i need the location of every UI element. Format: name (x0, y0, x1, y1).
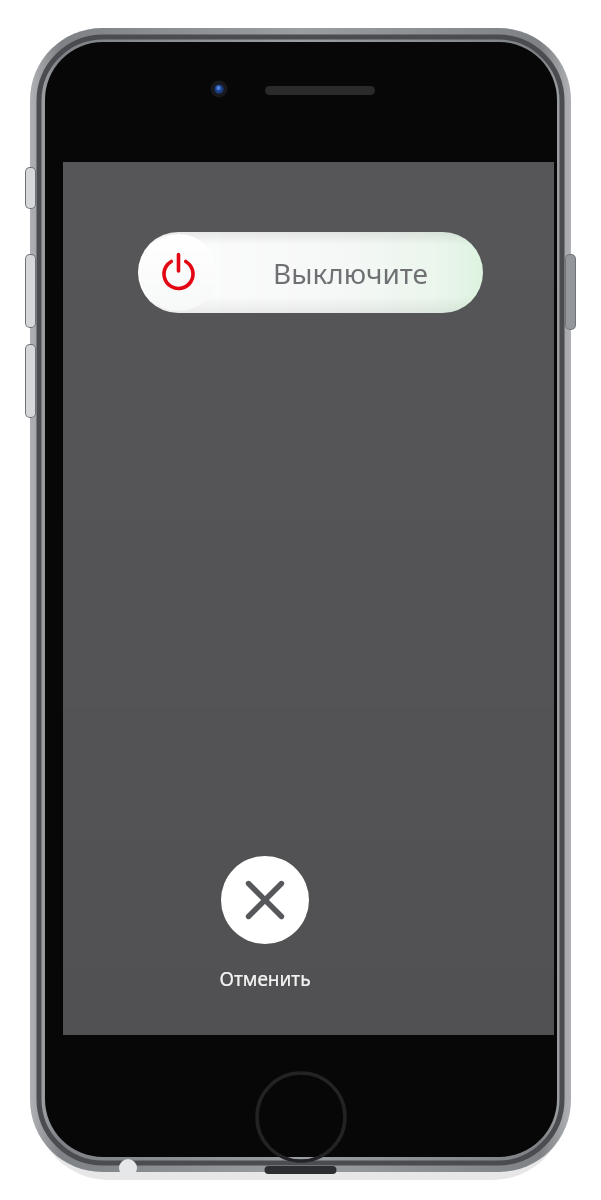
staticText: Выключите (273, 254, 428, 292)
button[interactable]: Выключите (138, 232, 483, 313)
staticText: Отменить (219, 966, 311, 992)
button[interactable]: Cancel (221, 856, 309, 944)
button[interactable]: Cancel (219, 856, 311, 992)
button[interactable]: Power off (140, 234, 217, 311)
